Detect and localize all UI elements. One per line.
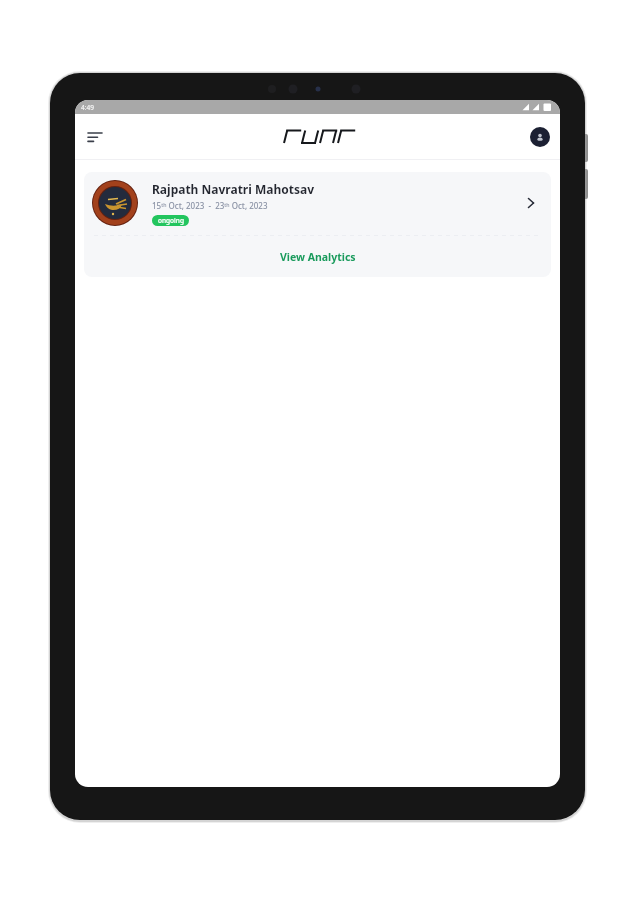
button[interactable]	[84, 172, 551, 235]
staticText: 15ᵗʰ Oct, 2023 - 23ᵗʰ Oct, 2023	[152, 200, 268, 211]
staticText: 4:49	[81, 103, 94, 112]
button[interactable]: View Analytics	[84, 236, 551, 277]
staticText: Rajpath Navratri Mahotsav	[152, 181, 315, 197]
button[interactable]	[530, 127, 550, 147]
staticText: ongoing	[158, 216, 184, 225]
staticText: View Analytics	[280, 250, 356, 264]
button[interactable]	[83, 125, 107, 149]
button[interactable]	[92, 180, 138, 226]
